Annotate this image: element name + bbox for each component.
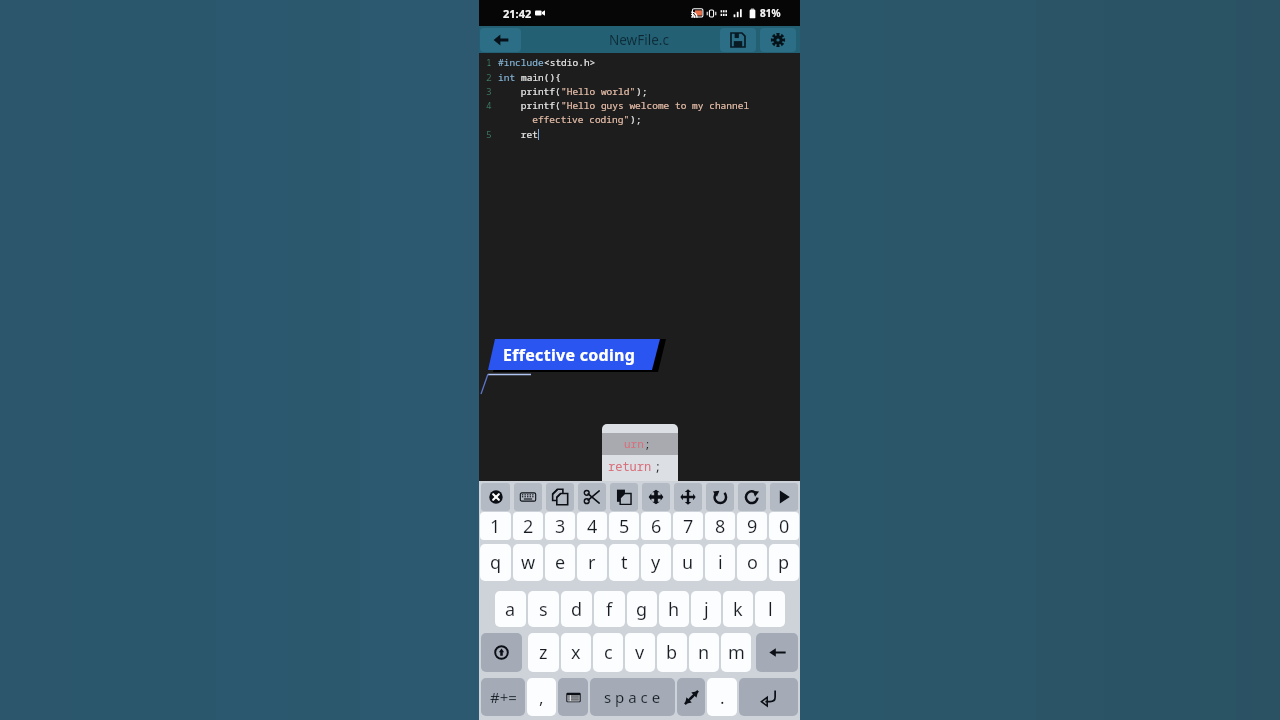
button[interactable]: a [495,591,526,627]
staticText: l [768,597,773,622]
button[interactable]: b [657,633,687,672]
button[interactable]: v [625,633,655,672]
button[interactable]: Enter [739,678,798,716]
button[interactable]: 1 [480,512,511,540]
button[interactable]: t [609,544,639,581]
button[interactable]: y [641,544,671,581]
button[interactable]: i [705,544,735,581]
button[interactable]: 3 [545,512,575,540]
staticText: 2 [486,71,492,84]
staticText: u [682,550,694,575]
staticText: #+= [490,687,517,707]
staticText: ); [630,113,642,126]
button[interactable]: p [769,544,799,581]
staticText: z [539,640,548,665]
button[interactable]: m [721,633,751,672]
staticText: k [733,597,743,622]
staticText: f [606,597,613,622]
button[interactable]: e [545,544,575,581]
staticText: 1 [486,56,492,69]
button[interactable]: d [561,591,592,627]
button[interactable]: j [691,591,721,627]
button[interactable]: r [577,544,607,581]
staticText: 1 [490,514,501,539]
button[interactable]: h [659,591,689,627]
button[interactable]: , [527,678,556,716]
button[interactable]: Save [720,28,756,52]
staticText: int [498,71,521,84]
button[interactable]: . [707,678,737,716]
staticText: . [720,686,725,709]
staticText: "Hello world" [561,85,636,98]
button[interactable]: u [673,544,703,581]
button[interactable]: return [602,455,678,490]
button[interactable]: 7 [673,512,703,540]
staticText: g [636,597,648,622]
button[interactable]: 0 [769,512,799,540]
staticText: main(){ [521,71,561,84]
button[interactable]: #+= [481,678,525,716]
button[interactable]: c [593,633,623,672]
button[interactable]: 2 [513,512,543,540]
button[interactable]: k [723,591,753,627]
staticText: ); [636,85,648,98]
button[interactable]: 5 [609,512,639,540]
staticText: 2 [523,514,534,539]
button[interactable]: 9 [737,512,767,540]
button[interactable]: 4 [577,512,607,540]
button[interactable]: Paste [610,483,638,511]
button[interactable]: n [689,633,719,672]
staticText: s p a c e [604,687,661,707]
staticText: w [521,550,536,575]
button[interactable]: q [480,544,511,581]
button[interactable]: Resize keyboard [677,678,705,716]
button[interactable]: Move cursor [674,483,702,511]
button[interactable]: Undo [706,483,734,511]
button[interactable]: f [594,591,625,627]
button[interactable]: Toggle keyboard [514,483,542,511]
button[interactable]: s p a c e [590,678,675,716]
staticText: j [704,597,709,622]
staticText: p [778,550,790,575]
staticText: v [635,640,645,665]
button[interactable]: Clipboard [558,678,588,716]
button[interactable]: Back [480,28,521,52]
button[interactable]: Move cursor vertically [642,483,670,511]
button[interactable]: w [513,544,543,581]
button[interactable]: urn [602,433,678,455]
staticText: 4 [486,99,492,112]
staticText: 3 [555,514,566,539]
staticText: 4 [587,514,598,539]
button[interactable]: x [561,633,591,672]
staticText: e [555,550,566,575]
button[interactable]: z [528,633,559,672]
staticText: 8 [715,514,726,539]
button[interactable]: 6 [641,512,671,540]
button[interactable]: s [528,591,559,627]
staticText: y [651,550,661,575]
staticText: 7 [683,514,694,539]
button[interactable]: 8 [705,512,735,540]
staticText: 21:42 [503,6,532,21]
staticText: effective coding" [498,113,630,126]
button[interactable]: Copy [546,483,574,511]
staticText: r [588,550,596,575]
button[interactable]: Shift [481,633,522,672]
button[interactable]: Close keyboard [481,483,510,511]
button[interactable]: Settings [760,28,796,52]
staticText: ret [498,128,538,141]
staticText: t [621,550,628,575]
button[interactable]: Backspace [756,633,798,672]
button[interactable]: Run [770,483,798,511]
button[interactable]: g [627,591,657,627]
staticText: m [728,640,745,665]
button[interactable]: Cut [578,483,606,511]
button[interactable]: o [737,544,767,581]
staticText: b [666,640,678,665]
staticText: , [539,686,544,709]
staticText: 9 [747,514,758,539]
staticText: 0 [779,514,790,539]
button[interactable]: l [755,591,785,627]
staticText: h [668,597,680,622]
button[interactable]: Redo [738,483,766,511]
